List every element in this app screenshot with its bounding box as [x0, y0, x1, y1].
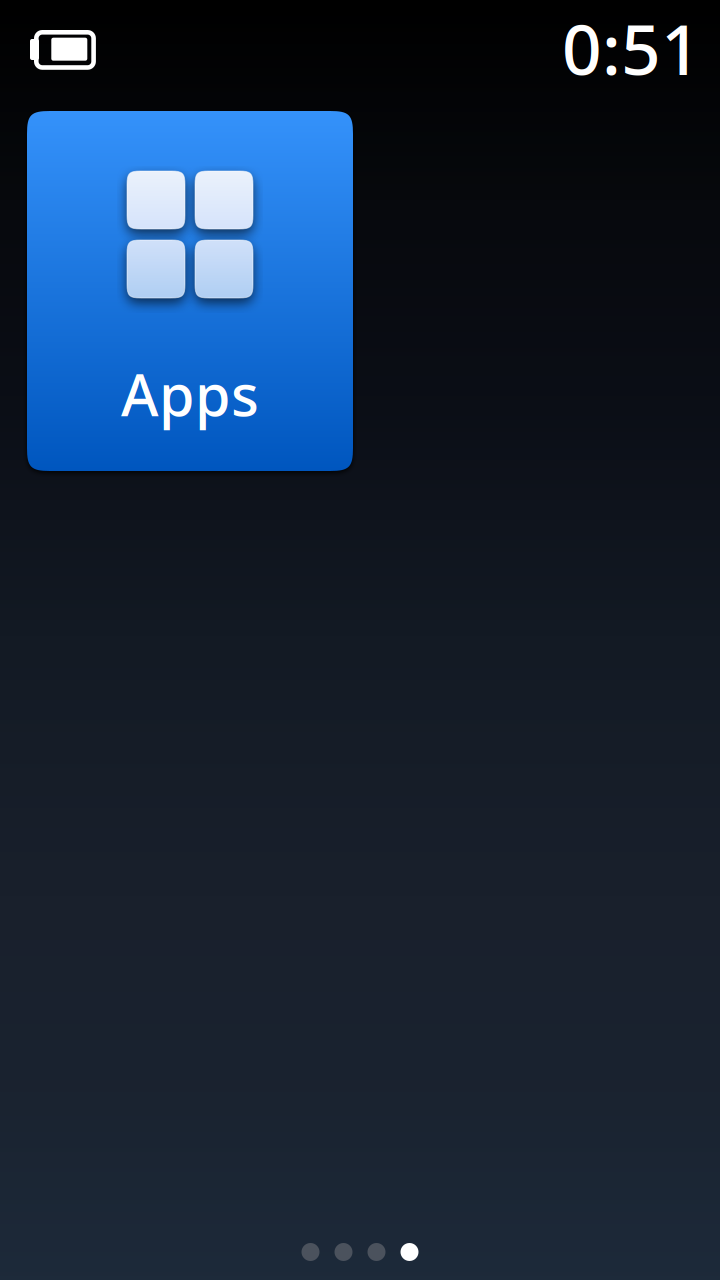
staticText: Apps	[121, 356, 259, 432]
button[interactable]: Battery	[28, 26, 96, 70]
button[interactable]: Apps	[27, 111, 353, 471]
button[interactable]: Page 4 of 4	[291, 1235, 428, 1269]
staticText: 0:51	[562, 2, 701, 94]
